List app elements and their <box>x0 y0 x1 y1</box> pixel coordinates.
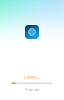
staticText: Please wait <box>24 88 39 92</box>
staticText: Loading… <box>24 74 40 79</box>
